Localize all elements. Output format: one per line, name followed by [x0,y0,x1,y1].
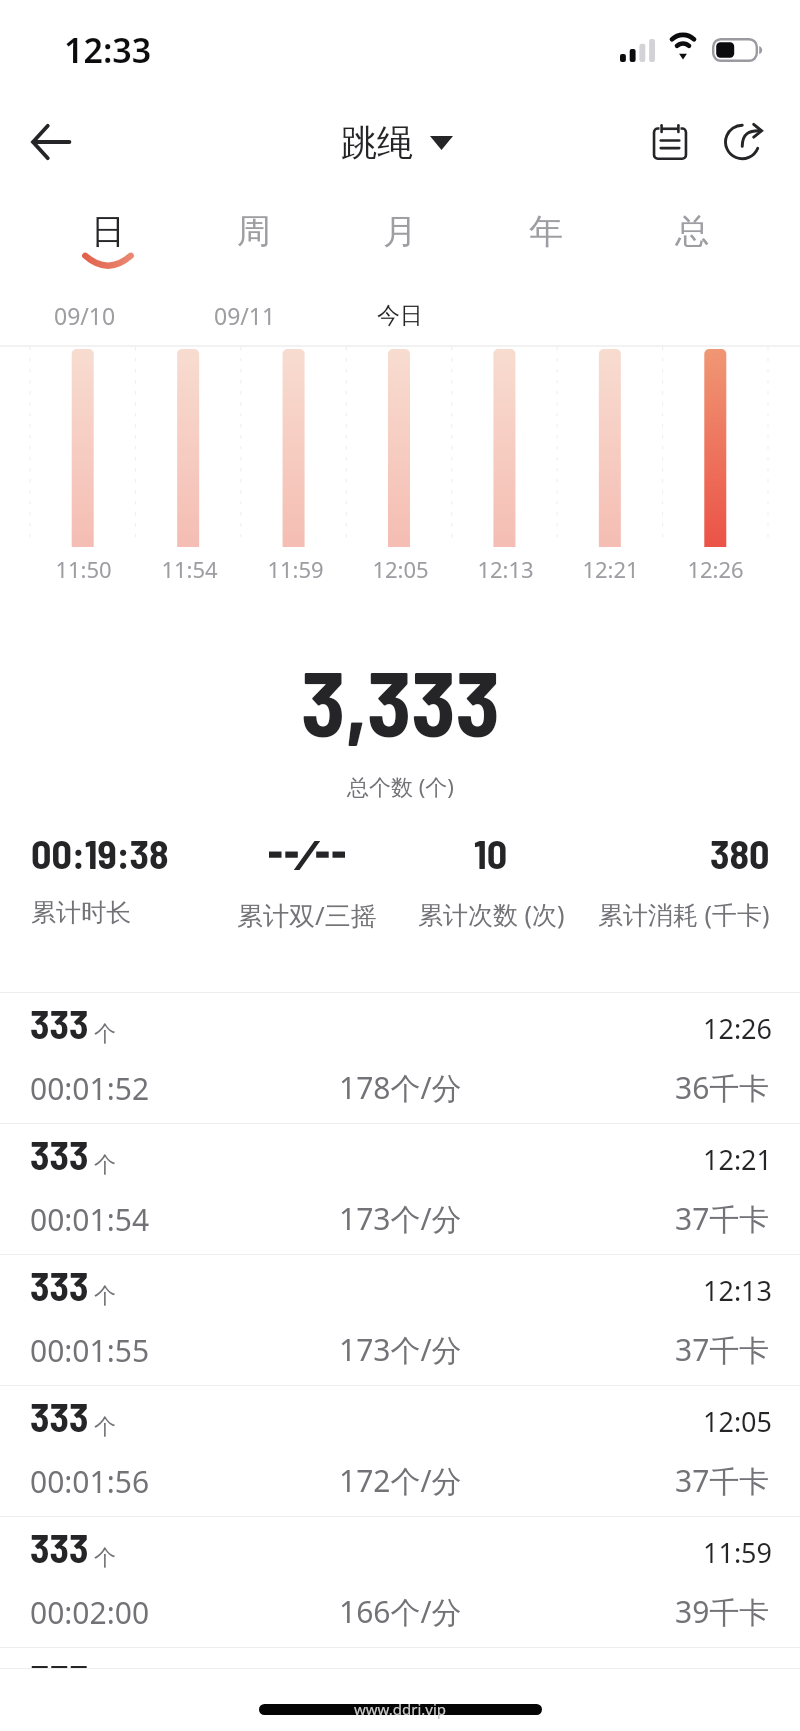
staticText: 37千卡 [675,1329,770,1370]
staticText: 12:05 [703,1403,773,1440]
staticText: 09/10 [54,300,116,331]
staticText: 个 [94,1282,116,1310]
staticText: 12:13 [703,1272,773,1309]
button[interactable]: 333 [0,1517,800,1648]
staticText: 333 [30,1392,89,1440]
button[interactable]: Records [634,106,706,178]
button[interactable]: 跳绳 [341,120,453,165]
staticText: 个 [94,1020,116,1048]
staticText: 周 [237,210,271,253]
staticText: 今日 [377,301,423,330]
button[interactable]: 月 [327,196,473,282]
staticText: 00:19:38 [31,829,169,877]
staticText: 333 [30,999,89,1047]
staticText: 00:01:52 [30,1068,150,1109]
button[interactable]: 总 [619,196,765,282]
staticText: 10 [474,829,508,877]
staticText: 00:01:56 [30,1461,150,1502]
staticText: 37千卡 [675,1460,770,1501]
staticText: 个 [94,1544,116,1572]
staticText: 380 [710,829,770,877]
staticText: 333 [30,1130,89,1178]
button[interactable]: 日 [35,196,181,282]
staticText: 11:50 [55,554,112,584]
staticText: 年 [529,210,563,253]
staticText: 11:59 [703,1534,773,1571]
staticText: 12:21 [582,554,639,584]
button[interactable]: 333 [0,1386,800,1517]
button[interactable]: 周 [181,196,327,282]
button[interactable]: Share [708,106,780,178]
staticText: 11:52 [703,1665,773,1669]
staticText: 39千卡 [675,1591,770,1632]
staticText: 00:02:00 [30,1592,150,1633]
button[interactable]: 333 [0,1648,800,1669]
button[interactable]: 333 [0,1124,800,1255]
staticText: www.ddri.vip [354,1699,447,1719]
staticText: 个 [94,1413,116,1441]
staticText: 09/11 [214,300,276,331]
staticText: 173个/分 [339,1198,462,1239]
staticText: 36千卡 [675,1067,770,1108]
staticText: 37千卡 [675,1198,770,1239]
button[interactable]: 年 [473,196,619,282]
staticText: 12:13 [477,554,534,584]
staticText: 11:59 [267,554,324,584]
button[interactable]: 333 [0,993,800,1124]
staticText: 12:05 [372,554,429,584]
staticText: 333 [30,1523,89,1571]
staticText: 333 [30,1654,89,1669]
staticText: 166个/分 [339,1591,462,1632]
staticText: 12:33 [64,27,152,73]
staticText: 累计双/三摇 [237,897,377,933]
staticText: 月 [383,210,417,253]
staticText: 333 [30,1261,89,1309]
staticText: 11:54 [161,554,218,584]
staticText: 3,333 [301,646,500,755]
staticText: 00:01:55 [30,1330,150,1371]
staticText: 173个/分 [339,1329,462,1370]
button[interactable]: 333 [0,1255,800,1386]
staticText: 累计时长 [31,897,131,928]
staticText: 12:26 [703,1010,773,1047]
staticText: 12:21 [703,1141,773,1178]
button[interactable]: Back [15,106,87,178]
staticText: 日 [91,210,125,253]
staticText: 总个数 (个) [347,771,454,801]
staticText: 172个/分 [339,1460,462,1501]
staticText: 累计消耗 (千卡) [598,897,770,931]
staticText: 178个/分 [339,1067,462,1108]
staticText: 个 [94,1151,116,1179]
staticText: 00:01:54 [30,1199,150,1240]
staticText: 总 [675,210,709,253]
staticText: 累计次数 (次) [418,897,565,931]
staticText: 12:26 [687,554,744,584]
staticText: 跳绳 [341,120,413,165]
